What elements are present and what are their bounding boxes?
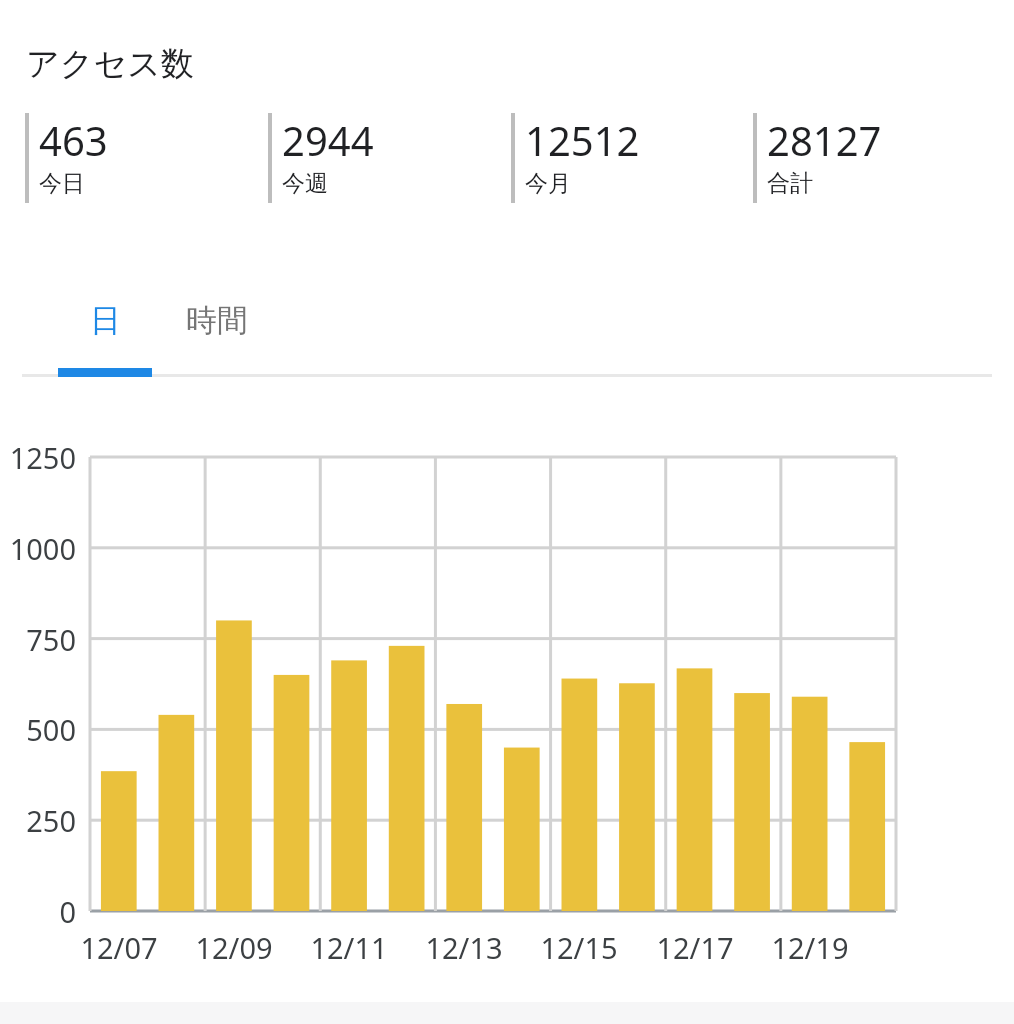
- button[interactable]: 28127: [753, 113, 991, 203]
- staticText: 今週: [282, 169, 328, 198]
- staticText: 12512: [525, 113, 640, 167]
- staticText: 12/17: [635, 928, 755, 967]
- staticText: 1250: [0, 438, 76, 477]
- staticText: 12/11: [289, 928, 409, 967]
- staticText: 463: [39, 113, 108, 167]
- staticText: 12/13: [404, 928, 524, 967]
- button[interactable]: 12512: [511, 113, 749, 203]
- button[interactable]: 2944: [268, 113, 506, 203]
- staticText: 500: [0, 710, 76, 749]
- staticText: 12/19: [750, 928, 870, 967]
- button[interactable]: 日: [58, 286, 152, 354]
- staticText: 12/15: [519, 928, 639, 967]
- staticText: 250: [0, 801, 76, 840]
- staticText: 12/09: [174, 928, 294, 967]
- staticText: 今日: [39, 169, 85, 198]
- staticText: 今月: [525, 169, 571, 198]
- staticText: 1000: [0, 529, 76, 568]
- staticText: 750: [0, 620, 76, 659]
- staticText: 12/07: [59, 928, 179, 967]
- button[interactable]: 時間: [162, 286, 272, 354]
- staticText: 合計: [767, 169, 813, 198]
- staticText: 2944: [282, 113, 374, 167]
- staticText: アクセス数: [26, 43, 195, 85]
- button[interactable]: 463: [25, 113, 263, 203]
- staticText: 28127: [767, 113, 882, 167]
- staticText: 0: [0, 892, 76, 931]
- staticText: 時間: [186, 301, 248, 340]
- staticText: 日: [90, 301, 121, 340]
